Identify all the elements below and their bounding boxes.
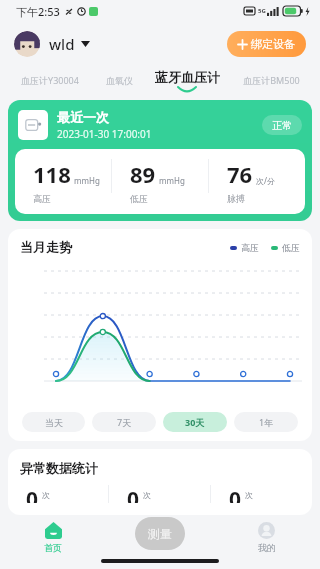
- staticText: 血压计BM500: [243, 74, 300, 86]
- staticText: 测量: [148, 526, 172, 541]
- button[interactable]: 7天: [92, 412, 156, 432]
- button[interactable]: 血压计BM500: [228, 66, 314, 94]
- staticText: wld: [49, 34, 75, 54]
- button[interactable]: 血压计Y30004: [6, 66, 93, 94]
- staticText: mmHg: [159, 175, 185, 186]
- staticText: 0: [127, 485, 140, 503]
- staticText: 绑定设备: [251, 37, 295, 51]
- staticText: 次: [245, 490, 253, 500]
- staticText: 当月走势: [20, 239, 72, 255]
- staticText: 脉搏: [227, 193, 245, 204]
- staticText: 30天: [185, 416, 205, 428]
- button[interactable]: 蓝牙血压计: [146, 66, 228, 94]
- staticText: 次: [143, 490, 151, 500]
- button[interactable]: 1年: [234, 412, 298, 432]
- button[interactable]: 当天: [22, 412, 85, 432]
- staticText: 0: [26, 485, 39, 503]
- staticText: 118: [33, 159, 71, 189]
- staticText: 0: [229, 485, 242, 503]
- staticText: 76: [227, 159, 253, 189]
- staticText: 正常: [272, 119, 292, 132]
- button[interactable]: 测量: [106, 515, 213, 569]
- staticText: 7天: [117, 416, 132, 428]
- button[interactable]: 首页: [0, 515, 106, 569]
- other: 我的: [258, 522, 275, 539]
- staticText: 89: [130, 159, 156, 189]
- staticText: 次/分: [256, 175, 275, 186]
- staticText: 血氧仪: [106, 75, 133, 86]
- button[interactable]: 绑定设备: [227, 31, 306, 57]
- staticText: 我的: [258, 542, 276, 553]
- staticText: 首页: [44, 542, 62, 553]
- button[interactable]: 30天: [163, 412, 227, 432]
- staticText: mmHg: [74, 175, 100, 186]
- button[interactable]: 正常: [262, 115, 302, 135]
- staticText: 最近一次: [57, 109, 109, 125]
- staticText: 当天: [45, 417, 63, 428]
- other: 首页: [45, 522, 62, 539]
- staticText: 低压: [282, 242, 300, 253]
- button[interactable]: 最近一次: [8, 100, 312, 221]
- staticText: 1年: [259, 416, 274, 428]
- staticText: 高压: [33, 193, 51, 204]
- staticText: 血压计Y30004: [21, 74, 79, 86]
- button[interactable]: 我的: [213, 515, 320, 569]
- staticText: 次: [42, 490, 50, 500]
- staticText: 低压: [130, 193, 148, 204]
- staticText: 2023-01-30 17:00:01: [57, 127, 152, 141]
- staticText: 异常数据统计: [20, 460, 98, 476]
- staticText: 下午2:53: [16, 4, 60, 19]
- button[interactable]: 血氧仪: [93, 66, 146, 94]
- staticText: 蓝牙血压计: [155, 69, 220, 85]
- button[interactable]: wld: [14, 31, 96, 57]
- staticText: 高压: [241, 242, 259, 253]
- staticText: 5G: [258, 7, 266, 15]
